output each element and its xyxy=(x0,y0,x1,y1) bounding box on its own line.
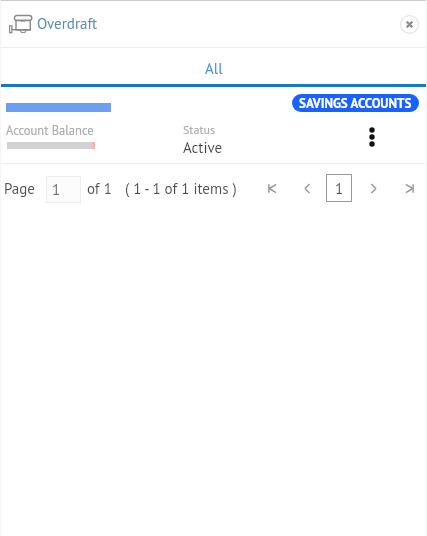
staticText: Overdraft xyxy=(37,14,98,33)
staticText: Account Balance xyxy=(6,122,94,138)
button[interactable]: First page xyxy=(261,177,283,199)
staticText: 1 xyxy=(335,179,344,198)
button[interactable]: Close xyxy=(395,10,423,38)
button[interactable]: 1 xyxy=(326,174,352,202)
staticText: Status xyxy=(183,122,215,138)
button[interactable]: Next page xyxy=(362,177,384,199)
button[interactable]: More options xyxy=(359,124,385,150)
button[interactable]: Last page xyxy=(398,177,420,199)
button[interactable]: Previous page xyxy=(296,177,318,199)
button[interactable]: All xyxy=(0,48,427,84)
button[interactable]: 1 xyxy=(46,176,81,203)
staticText: 1 xyxy=(52,180,61,199)
staticText: Active xyxy=(183,138,223,157)
staticText: SAVINGS ACCOUNTS xyxy=(299,95,412,112)
button[interactable]: Overdraft xyxy=(0,10,106,37)
staticText: Page xyxy=(4,179,35,198)
staticText: All xyxy=(205,59,223,78)
staticText: ( 1 - 1 of 1 items ) xyxy=(125,179,237,198)
button[interactable]: SAVINGS ACCOUNTS xyxy=(292,94,419,112)
staticText: of 1 xyxy=(87,179,112,198)
